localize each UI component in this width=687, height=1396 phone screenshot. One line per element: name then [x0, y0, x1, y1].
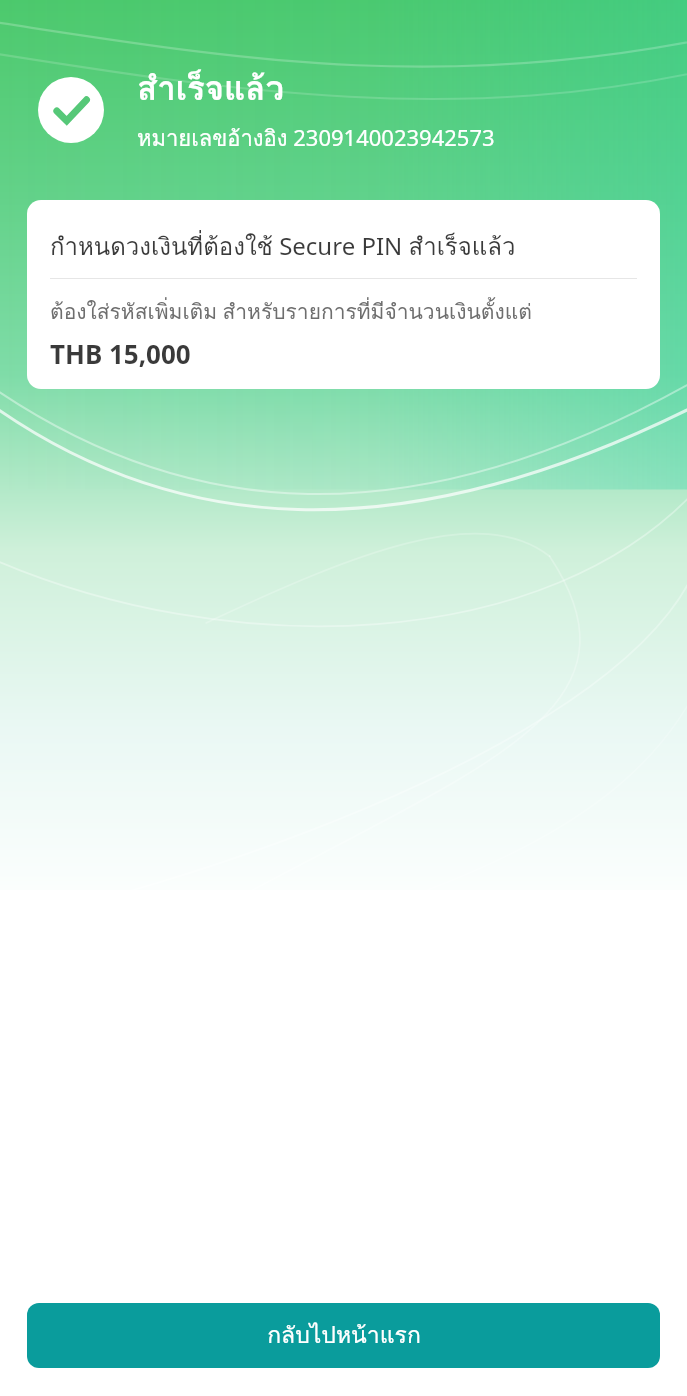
staticText: กลับไปหน้าแรก: [267, 1317, 421, 1354]
staticText: กำหนดวงเงินที่ต้องใช้ Secure PIN สำเร็จแ…: [50, 227, 516, 265]
staticText: สำเร็จแล้ว: [137, 62, 284, 114]
staticText: หมายเลขอ้างอิง 2309140023942573: [137, 121, 495, 156]
button[interactable]: กลับไปหน้าแรก: [27, 1303, 660, 1368]
staticText: THB 15,000: [50, 336, 191, 371]
button[interactable]: กำหนดวงเงินที่ต้องใช้ Secure PIN สำเร็จแ…: [27, 200, 660, 389]
staticText: ต้องใส่รหัสเพิ่มเติม สำหรับรายการที่มีจำ…: [50, 295, 532, 328]
